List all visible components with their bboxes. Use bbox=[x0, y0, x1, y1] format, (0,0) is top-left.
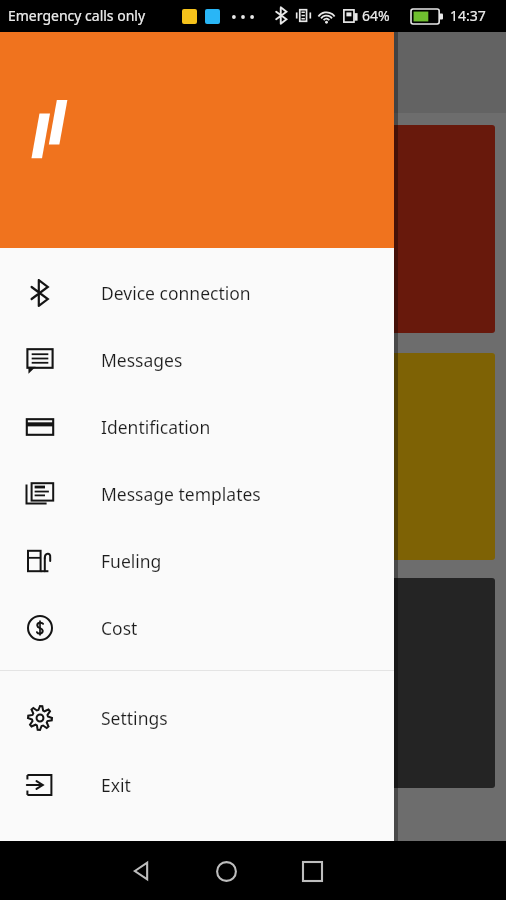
staticText: Messages bbox=[101, 348, 183, 372]
staticText: Message templates bbox=[101, 482, 261, 506]
staticText: Fueling bbox=[101, 549, 162, 573]
staticText: Identification bbox=[101, 415, 211, 439]
button[interactable]: Identification bbox=[0, 393, 394, 460]
staticText: 14:37 bbox=[450, 6, 486, 25]
button[interactable]: Device connection bbox=[0, 259, 394, 326]
button[interactable]: Home bbox=[202, 847, 250, 895]
staticText: 64% bbox=[362, 6, 390, 25]
button[interactable]: Cost bbox=[0, 594, 394, 661]
staticText: Exit bbox=[101, 773, 131, 797]
button[interactable]: Recents bbox=[288, 847, 336, 895]
staticText: Cost bbox=[101, 616, 138, 640]
staticText: Settings bbox=[101, 706, 168, 730]
button[interactable]: Exit bbox=[0, 751, 394, 818]
button[interactable]: Message templates bbox=[0, 460, 394, 527]
button[interactable]: Back bbox=[117, 847, 165, 895]
button[interactable]: Fueling bbox=[0, 527, 394, 594]
staticText: Emergency calls only bbox=[8, 6, 146, 25]
staticText: Device connection bbox=[101, 281, 251, 305]
button[interactable]: Settings bbox=[0, 684, 394, 751]
button[interactable]: Messages bbox=[0, 326, 394, 393]
